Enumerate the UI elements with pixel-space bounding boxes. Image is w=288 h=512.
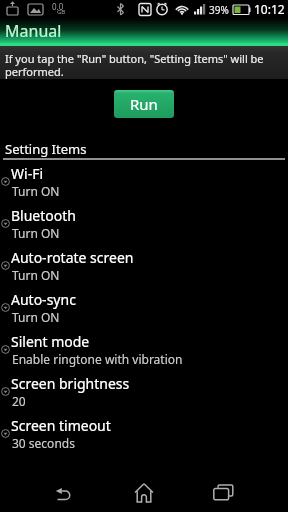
staticText: 39%: [209, 3, 229, 17]
staticText: Setting Items: [5, 140, 87, 158]
button[interactable]: Auto-rotate screen: [0, 248, 288, 290]
staticText: Wi-Fi: [11, 164, 44, 183]
staticText: Screen timeout: [11, 416, 111, 435]
staticText: Auto-sync: [11, 290, 76, 309]
staticText: Turn ON: [12, 225, 60, 241]
staticText: Bluetooth: [11, 206, 76, 225]
staticText: Manual: [5, 20, 62, 42]
staticText: 0.0: [52, 1, 64, 12]
staticText: Run: [130, 94, 158, 114]
staticText: Screen brightness: [11, 374, 130, 393]
button[interactable]: Screen brightness: [0, 374, 288, 416]
button[interactable]: Wi-Fi: [0, 164, 288, 206]
button[interactable]: Screen timeout: [0, 416, 288, 458]
staticText: Turn ON: [12, 183, 60, 199]
button[interactable]: [184, 458, 264, 512]
button[interactable]: Run: [114, 90, 174, 118]
button[interactable]: Silent mode: [0, 332, 288, 374]
button[interactable]: [104, 458, 184, 512]
staticText: Silent mode: [11, 332, 90, 351]
staticText: Turn ON: [12, 309, 60, 325]
button[interactable]: Auto-sync: [0, 290, 288, 332]
staticText: Turn ON: [12, 267, 60, 283]
button[interactable]: [24, 458, 104, 512]
button[interactable]: Bluetooth: [0, 206, 288, 248]
staticText: If you tap the "Run" button, "Setting It…: [5, 51, 264, 79]
staticText: Enable ringtone with vibration: [12, 351, 183, 367]
staticText: GB: [57, 8, 66, 16]
staticText: Auto-rotate screen: [11, 248, 134, 267]
staticText: 30 seconds: [12, 435, 75, 451]
staticText: 10:12: [254, 1, 285, 17]
staticText: 20: [12, 393, 26, 409]
